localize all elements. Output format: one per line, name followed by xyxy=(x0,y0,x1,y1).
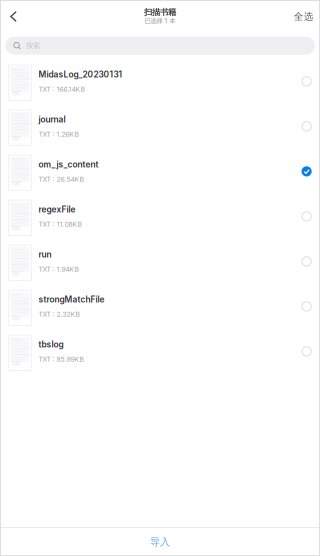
staticText: TXT : 1.94KB xyxy=(38,265,78,273)
staticText: MidasLog_20230131 xyxy=(38,69,122,80)
staticText: om_js_content xyxy=(38,159,98,170)
button[interactable]: TXT xyxy=(0,194,320,239)
staticText: TXT xyxy=(11,181,20,186)
staticText: TXT : 2.32KB xyxy=(38,310,79,318)
staticText: TXT xyxy=(11,361,20,366)
staticText: regexFile xyxy=(38,204,75,215)
button[interactable]: 搜索 xyxy=(5,37,315,55)
staticText: 全选 xyxy=(294,10,314,23)
button[interactable]: TXT xyxy=(0,239,320,284)
staticText: 导入 xyxy=(150,536,170,548)
staticText: journal xyxy=(38,114,65,125)
staticText: TXT : 26.54KB xyxy=(38,175,83,183)
button[interactable]: 全选 xyxy=(294,1,320,31)
staticText: TXT xyxy=(11,91,20,96)
staticText: TXT : 1.26KB xyxy=(38,130,78,138)
staticText: TXT xyxy=(11,136,20,141)
button[interactable]: TXT xyxy=(0,284,320,329)
staticText: TXT : 166.14KB xyxy=(38,85,84,93)
staticText: strongMatchFile xyxy=(38,294,104,305)
staticText: TXT xyxy=(11,226,20,231)
button[interactable]: TXT xyxy=(0,104,320,149)
staticText: run xyxy=(38,249,51,260)
button[interactable]: 导入 xyxy=(0,528,320,556)
staticText: TXT xyxy=(11,316,20,321)
staticText: 扫描书籍 xyxy=(144,7,176,17)
button[interactable]: TXT xyxy=(0,149,320,194)
button[interactable]: 返回 xyxy=(0,1,27,31)
staticText: TXT : 85.99KB xyxy=(38,355,83,363)
button[interactable]: TXT xyxy=(0,329,320,374)
button[interactable]: TXT xyxy=(0,59,320,104)
staticText: TXT : 11.08KB xyxy=(38,220,81,228)
staticText: tbslog xyxy=(38,339,63,350)
staticText: 已选择 1 本 xyxy=(144,17,175,25)
staticText: 搜索 xyxy=(26,41,40,50)
staticText: TXT xyxy=(11,271,20,276)
